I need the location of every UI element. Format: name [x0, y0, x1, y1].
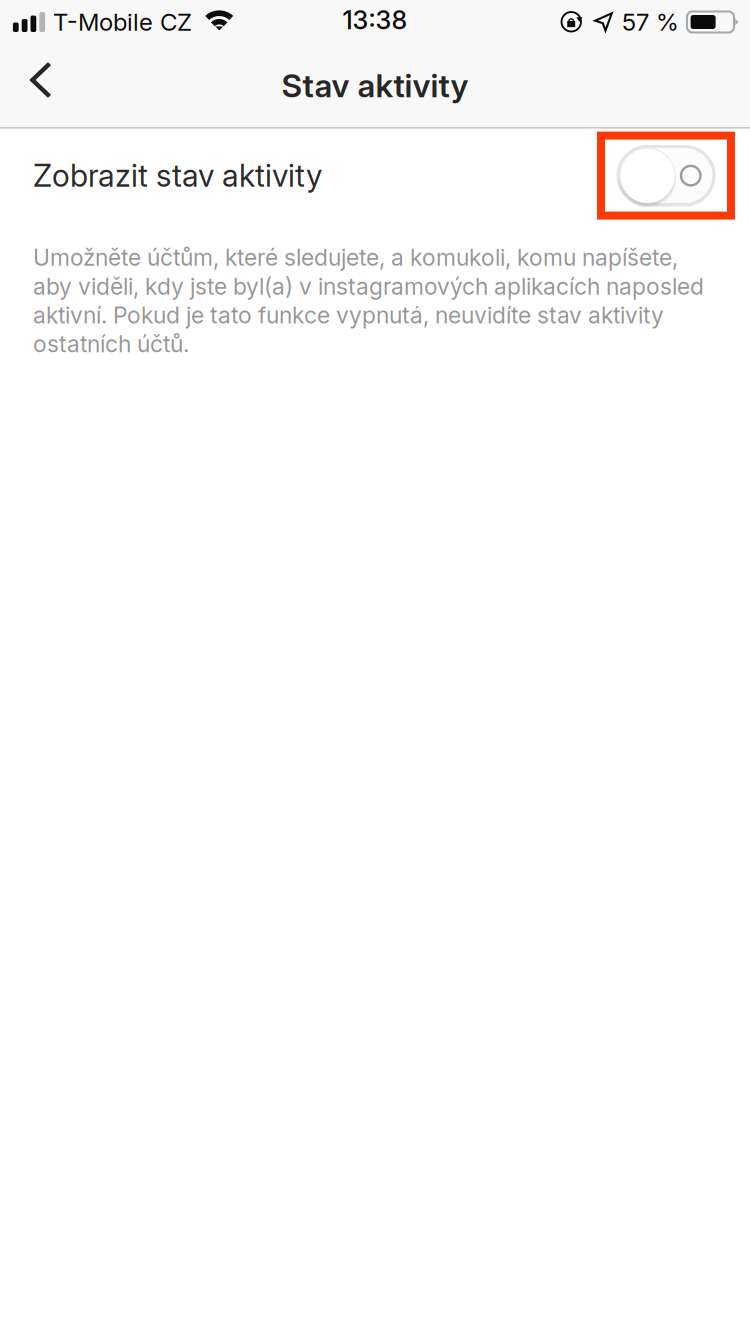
staticText: 57 %: [622, 7, 679, 36]
staticText: Zobrazit stav aktivity: [33, 157, 322, 194]
button[interactable]: Zobrazit stav aktivity: [0, 129, 750, 223]
staticText: Umožněte účtům, které sledujete, a komuk…: [33, 244, 704, 358]
staticText: T-Mobile CZ: [53, 7, 192, 36]
button[interactable]: Back: [0, 47, 82, 123]
staticText: 13:38: [342, 5, 407, 35]
staticText: Stav aktivity: [281, 66, 468, 105]
